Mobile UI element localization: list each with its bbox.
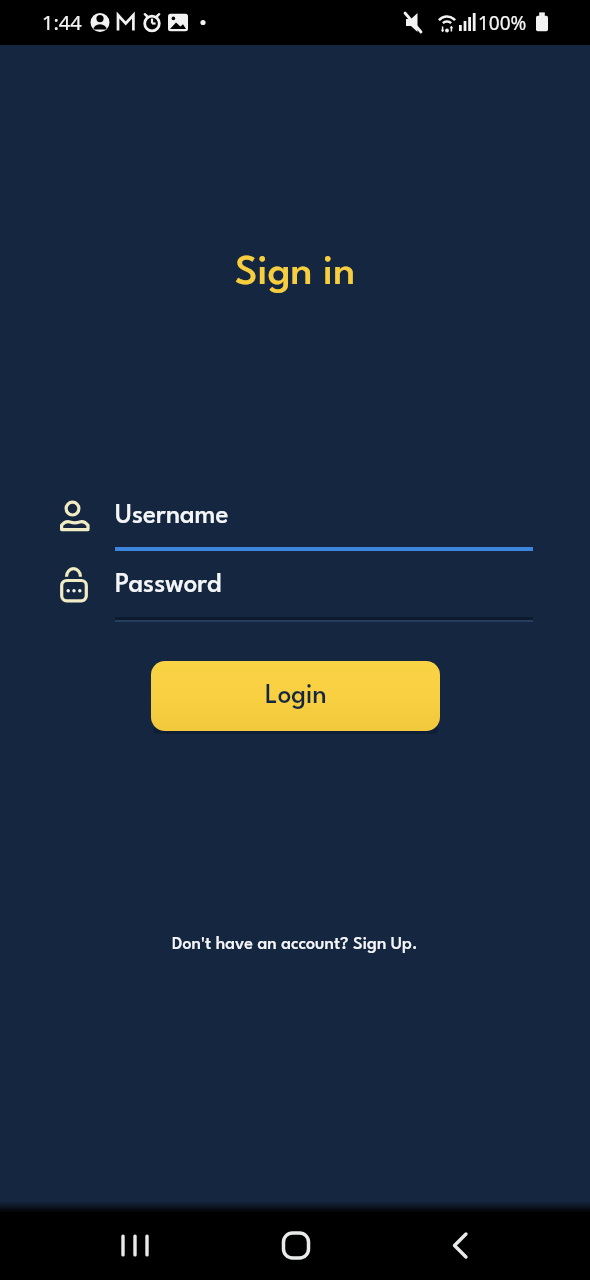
button[interactable]: Username <box>60 492 534 550</box>
staticText: Don't have an account? Sign Up. <box>172 936 418 953</box>
button[interactable] <box>256 1212 336 1280</box>
button[interactable]: Don't have an account? Sign Up. <box>0 923 590 965</box>
button[interactable] <box>97 1212 177 1280</box>
button[interactable] <box>420 1212 500 1280</box>
button[interactable]: Password <box>60 562 534 620</box>
staticText: 1:44 <box>42 9 82 36</box>
staticText: Username <box>115 504 229 529</box>
staticText: Login <box>265 684 327 709</box>
button[interactable]: Login <box>151 661 440 731</box>
staticText: Password <box>115 573 222 598</box>
staticText: 100% <box>478 10 527 36</box>
staticText: Sign in <box>235 255 356 294</box>
